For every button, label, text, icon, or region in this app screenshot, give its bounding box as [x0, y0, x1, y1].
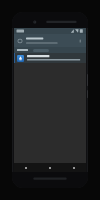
- button[interactable]: App icon: [14, 34, 86, 47]
- button[interactable]: Recents: [62, 163, 86, 172]
- button[interactable]: More options: [77, 38, 83, 44]
- button[interactable]: Notification app icon: [14, 53, 86, 63]
- other: Notification app icon: [17, 55, 24, 62]
- button[interactable]: [33, 49, 49, 52]
- button[interactable]: Back: [14, 163, 38, 172]
- button[interactable]: Home: [38, 163, 62, 172]
- button[interactable]: [17, 47, 31, 53]
- other: App icon: [17, 38, 23, 44]
